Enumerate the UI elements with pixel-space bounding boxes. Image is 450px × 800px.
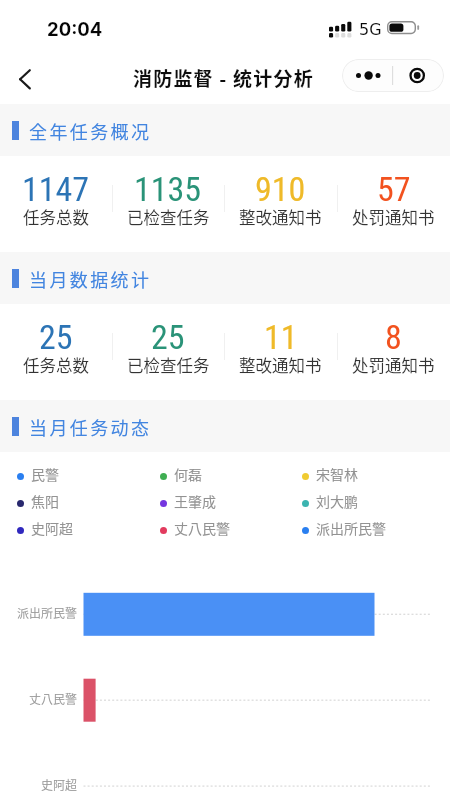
staticText: 8: [385, 317, 402, 357]
staticText: 派出所民警: [316, 518, 386, 538]
button[interactable]: 史阿超: [17, 519, 73, 542]
button[interactable]: Back: [2, 59, 48, 103]
button[interactable]: 刘大鹏: [302, 492, 358, 515]
staticText: 当月任务动态: [29, 414, 152, 440]
staticText: 1135: [134, 169, 202, 209]
staticText: 宋智林: [316, 464, 358, 484]
staticText: 任务总数: [23, 353, 89, 377]
staticText: 1147: [22, 169, 90, 209]
staticText: 焦阳: [31, 491, 59, 511]
staticText: 整改通知书: [239, 353, 322, 377]
staticText: 已检查任务: [127, 205, 210, 229]
staticText: 处罚通知书: [352, 205, 435, 229]
staticText: 丈八民警: [29, 690, 78, 707]
staticText: 5G: [359, 20, 382, 39]
staticText: 当月数据统计: [29, 266, 152, 292]
staticText: 11: [264, 317, 298, 357]
staticText: 史阿超: [41, 776, 78, 793]
staticText: 何磊: [174, 464, 202, 484]
staticText: 全年任务概况: [29, 118, 152, 144]
staticText: 25: [151, 317, 185, 357]
button[interactable]: 派出所民警: [302, 519, 386, 542]
staticText: 民警: [31, 464, 59, 484]
button[interactable]: 王肇成: [160, 492, 216, 515]
staticText: 处罚通知书: [352, 353, 435, 377]
button[interactable]: 民警: [17, 465, 59, 488]
staticText: 派出所民警: [17, 604, 78, 621]
staticText: 已检查任务: [127, 353, 210, 377]
staticText: 丈八民警: [174, 518, 230, 538]
button[interactable]: 焦阳: [17, 492, 59, 515]
staticText: 史阿超: [31, 518, 73, 538]
staticText: 任务总数: [23, 205, 89, 229]
staticText: 25: [39, 317, 73, 357]
button[interactable]: 宋智林: [302, 465, 358, 488]
staticText: 20:04: [47, 18, 103, 40]
staticText: 刘大鹏: [316, 491, 358, 511]
button[interactable]: 何磊: [160, 465, 202, 488]
staticText: 整改通知书: [239, 205, 322, 229]
staticText: 57: [377, 169, 411, 209]
button[interactable]: More options: [342, 59, 444, 92]
staticText: 910: [255, 169, 306, 209]
staticText: 王肇成: [174, 491, 216, 511]
button[interactable]: 丈八民警: [160, 519, 230, 542]
staticText: 消防监督 - 统计分析: [133, 64, 314, 92]
